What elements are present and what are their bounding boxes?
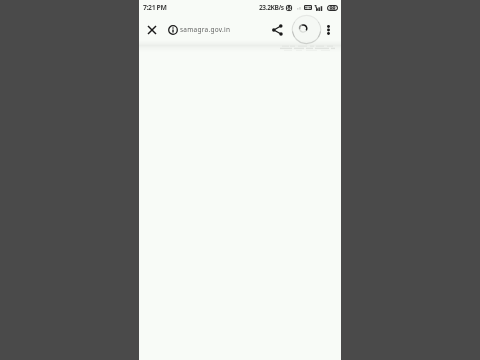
staticText: samagra.gov.in <box>180 25 231 34</box>
staticText: 7:21 PM <box>143 3 167 12</box>
button[interactable]: Close <box>141 19 162 40</box>
button[interactable]: samagra.gov.in <box>166 19 261 40</box>
button[interactable]: Share <box>267 19 288 40</box>
staticText: 23.2KB/s <box>259 3 284 12</box>
button[interactable]: Refresh <box>291 14 322 45</box>
button[interactable]: More options <box>318 19 339 40</box>
